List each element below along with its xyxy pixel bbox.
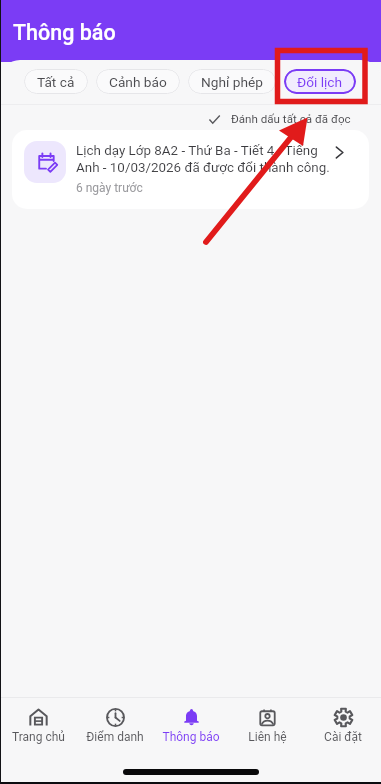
button[interactable]: Liên hệ [229,698,305,744]
button[interactable]: Lịch dạy Lớp 8A2 - Thứ Ba - Tiết 4 - Tiế… [12,130,369,209]
staticText: 6 ngày trước [76,181,143,195]
staticText: Liên hệ [248,730,287,744]
staticText: Thông báo [162,730,220,744]
staticText: Tất cả [37,74,75,90]
button[interactable]: Cảnh báo [96,69,180,94]
button[interactable]: Tất cả [24,69,88,94]
button[interactable]: Nghỉ phép [188,69,276,94]
button[interactable]: Trang chủ [0,698,77,744]
button[interactable]: Đổi lịch [284,69,356,94]
staticText: Cảnh báo [109,74,167,90]
button[interactable]: Thông báo [153,698,229,744]
staticText: Điểm danh [86,730,144,744]
staticText: Cài đặt [324,730,362,744]
staticText: Đổi lịch [297,74,343,90]
staticText: Lịch dạy Lớp 8A2 - Thứ Ba - Tiết 4 - Tiế… [76,143,330,176]
button[interactable]: Đánh dấu tất cả đã đọc [209,108,351,130]
staticText: Đánh dấu tất cả đã đọc [231,112,351,126]
other: Xem chi tiết [333,146,346,159]
staticText: Trang chủ [12,730,65,744]
button[interactable]: Cài đặt [305,698,381,744]
staticText: Thông báo [13,20,116,45]
button[interactable]: Điểm danh [77,698,153,744]
staticText: Nghỉ phép [201,74,263,90]
